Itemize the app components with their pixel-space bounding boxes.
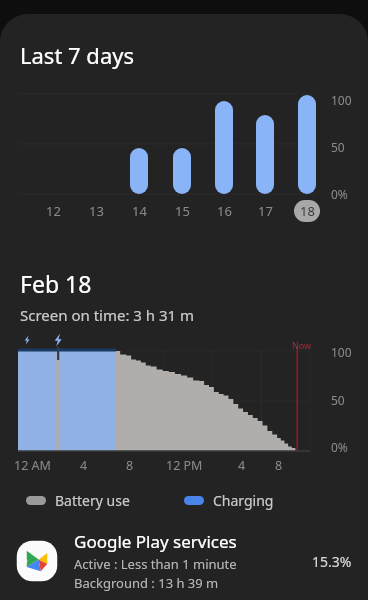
staticText: 17	[258, 202, 273, 220]
staticText: 0%	[331, 439, 348, 455]
staticText: 15	[175, 202, 190, 220]
staticText: 13	[89, 202, 104, 220]
staticText: 4	[80, 457, 88, 474]
staticText: Active : Less than 1 minute	[74, 555, 237, 573]
button[interactable]: Google Play services	[0, 526, 368, 600]
staticText: 50	[331, 139, 345, 155]
staticText: Google Play services	[74, 530, 237, 553]
staticText: 0%	[331, 186, 348, 202]
staticText: Feb 18	[20, 268, 92, 299]
staticText: 100	[331, 344, 352, 360]
staticText: 50	[331, 392, 345, 408]
staticText: 8	[126, 457, 134, 474]
staticText: 16	[217, 202, 232, 220]
staticText: 100	[331, 92, 352, 108]
staticText: 18	[300, 202, 315, 220]
staticText: 4	[238, 457, 246, 474]
staticText: 8	[275, 457, 283, 474]
staticText: 14	[132, 202, 147, 220]
staticText: 15.3%	[312, 552, 352, 571]
button[interactable]: Last 7 days	[0, 14, 368, 70]
staticText: 12 AM	[14, 457, 51, 474]
staticText: 12 PM	[166, 457, 203, 474]
staticText: 12	[46, 202, 61, 220]
staticText: Now	[292, 339, 312, 351]
other: Google Play services	[14, 538, 60, 584]
staticText: Last 7 days	[20, 40, 135, 70]
staticText: Charging	[213, 491, 274, 510]
button[interactable]: Battery use	[26, 491, 130, 510]
staticText: Screen on time: 3 h 31 m	[20, 305, 195, 325]
staticText: Background : 13 h 39 m	[74, 574, 219, 592]
button[interactable]: Charging	[184, 491, 274, 510]
staticText: Battery use	[55, 491, 130, 510]
